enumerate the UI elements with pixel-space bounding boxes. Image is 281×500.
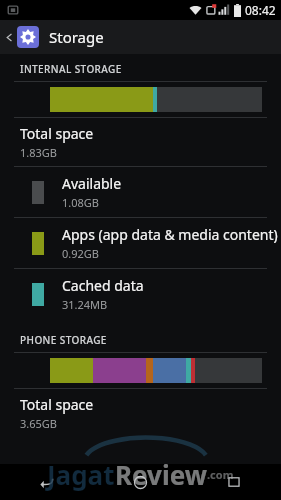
staticText: 3.65GB <box>20 416 57 431</box>
staticText: Apps (app data & media content) <box>62 225 278 244</box>
staticText: Total space <box>20 395 94 414</box>
button[interactable]: Back <box>0 464 93 500</box>
staticText: 08:42 <box>245 2 276 18</box>
staticText: INTERNAL STORAGE <box>20 62 122 76</box>
staticText: 1.83GB <box>20 145 57 160</box>
staticText: Review <box>115 457 207 492</box>
staticText: Cached data <box>62 276 144 295</box>
staticText: Storage <box>49 27 104 47</box>
staticText: 31.24MB <box>62 297 108 312</box>
button[interactable]: Home <box>93 464 187 500</box>
staticText: Jagat <box>47 457 115 492</box>
staticText: .com <box>207 467 234 482</box>
staticText: Available <box>62 174 122 193</box>
staticText: 1.08GB <box>62 195 99 210</box>
button[interactable]: Available <box>0 167 281 217</box>
staticText: Total space <box>20 124 94 143</box>
staticText: PHONE STORAGE <box>20 333 107 347</box>
button[interactable]: Recent apps <box>187 464 281 500</box>
button[interactable]: Total space <box>0 389 281 437</box>
staticText: 0.92GB <box>62 246 99 261</box>
button[interactable]: Total space <box>0 118 281 166</box>
button[interactable]: Cached data <box>0 269 281 319</box>
button[interactable]: Navigate up <box>0 20 41 54</box>
button[interactable]: Apps (app data & media content) <box>0 218 281 268</box>
